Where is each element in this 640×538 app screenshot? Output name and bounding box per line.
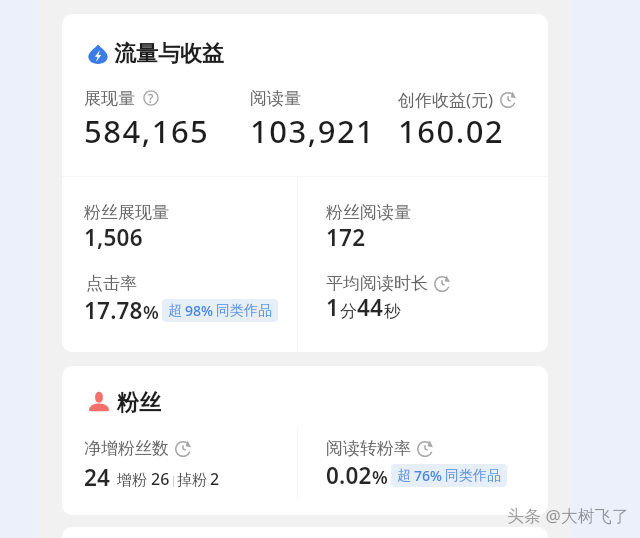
staticText: 98%: [185, 301, 213, 320]
staticText: ?: [148, 90, 154, 106]
button[interactable]: 粉丝: [62, 366, 548, 515]
button[interactable]: 平均阅读时长: [326, 273, 450, 294]
staticText: 展现量: [84, 88, 135, 109]
staticText: 160.02: [398, 110, 505, 152]
button[interactable]: 说明: [143, 90, 159, 106]
button[interactable]: 刷新: [417, 441, 433, 457]
staticText: 流量与收益: [114, 40, 224, 68]
staticText: 超: [168, 302, 182, 320]
other: 流量与收益: [87, 43, 109, 65]
staticText: %: [143, 300, 159, 325]
button[interactable]: 超: [397, 466, 501, 485]
staticText: 阅读量: [250, 88, 301, 109]
staticText: 粉丝展现量: [84, 202, 169, 223]
staticText: 584,165: [84, 110, 210, 152]
staticText: 1,506: [84, 222, 143, 253]
staticText: 点击率: [86, 273, 137, 294]
staticText: 2: [210, 468, 220, 490]
button[interactable]: 流量与收益: [87, 40, 224, 68]
staticText: 172: [326, 222, 366, 253]
button[interactable]: 刷新: [500, 92, 516, 108]
staticText: 26: [151, 468, 170, 490]
staticText: 掉粉: [177, 471, 207, 490]
staticText: 1: [326, 292, 340, 323]
button[interactable]: 流量与收益: [62, 14, 548, 352]
button[interactable]: 粉丝: [88, 386, 161, 414]
button[interactable]: 点击率: [86, 273, 137, 294]
staticText: 分: [340, 301, 357, 322]
staticText: 同类作品: [216, 302, 272, 320]
button[interactable]: 阅读量: [250, 88, 301, 109]
staticText: 阅读转粉率: [326, 438, 411, 459]
staticText: 0.02: [326, 460, 372, 491]
staticText: 同类作品: [445, 467, 501, 485]
button[interactable]: 阅读转粉率: [326, 438, 433, 459]
button[interactable]: 展现量: [84, 88, 159, 109]
staticText: 净增粉丝数: [84, 438, 169, 459]
staticText: 44: [357, 292, 384, 323]
staticText: 秒: [384, 301, 401, 322]
button[interactable]: 刷新: [175, 441, 191, 457]
staticText: 76%: [414, 466, 442, 485]
button[interactable]: 刷新: [434, 276, 450, 292]
button[interactable]: 粉丝阅读量: [326, 202, 411, 223]
staticText: %: [372, 465, 388, 490]
button[interactable]: 超: [168, 301, 272, 320]
staticText: 粉丝阅读量: [326, 202, 411, 223]
staticText: 24: [84, 462, 111, 493]
staticText: 粉丝: [117, 389, 161, 417]
other: 粉丝: [88, 388, 110, 413]
staticText: 17.78: [84, 295, 143, 326]
staticText: 超: [397, 467, 411, 485]
staticText: 103,921: [250, 110, 376, 152]
button[interactable]: 粉丝展现量: [84, 202, 169, 223]
button[interactable]: 创作收益(元): [398, 88, 516, 111]
staticText: 增粉: [117, 471, 147, 490]
staticText: 创作收益(元): [398, 88, 494, 111]
staticText: 头条 @大树飞了: [507, 504, 629, 527]
staticText: 平均阅读时长: [326, 273, 428, 294]
button[interactable]: 净增粉丝数: [84, 438, 191, 459]
